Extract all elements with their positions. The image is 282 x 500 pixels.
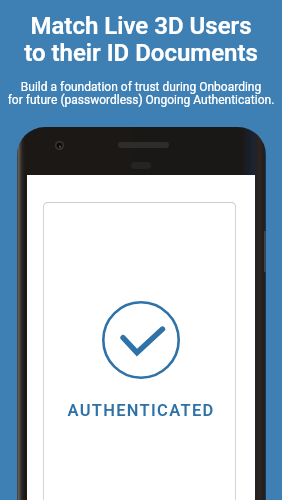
other: Authenticated	[102, 301, 180, 379]
staticText: Match Live 3D Users	[0, 12, 282, 40]
staticText: for future (passwordless) Ongoing Authen…	[0, 93, 282, 107]
staticText: AUTHENTICATED	[0, 401, 282, 420]
staticText: to their ID Documents	[0, 39, 282, 67]
staticText: Build a foundation of trust during Onboa…	[0, 80, 282, 94]
button[interactable]	[43, 202, 236, 500]
